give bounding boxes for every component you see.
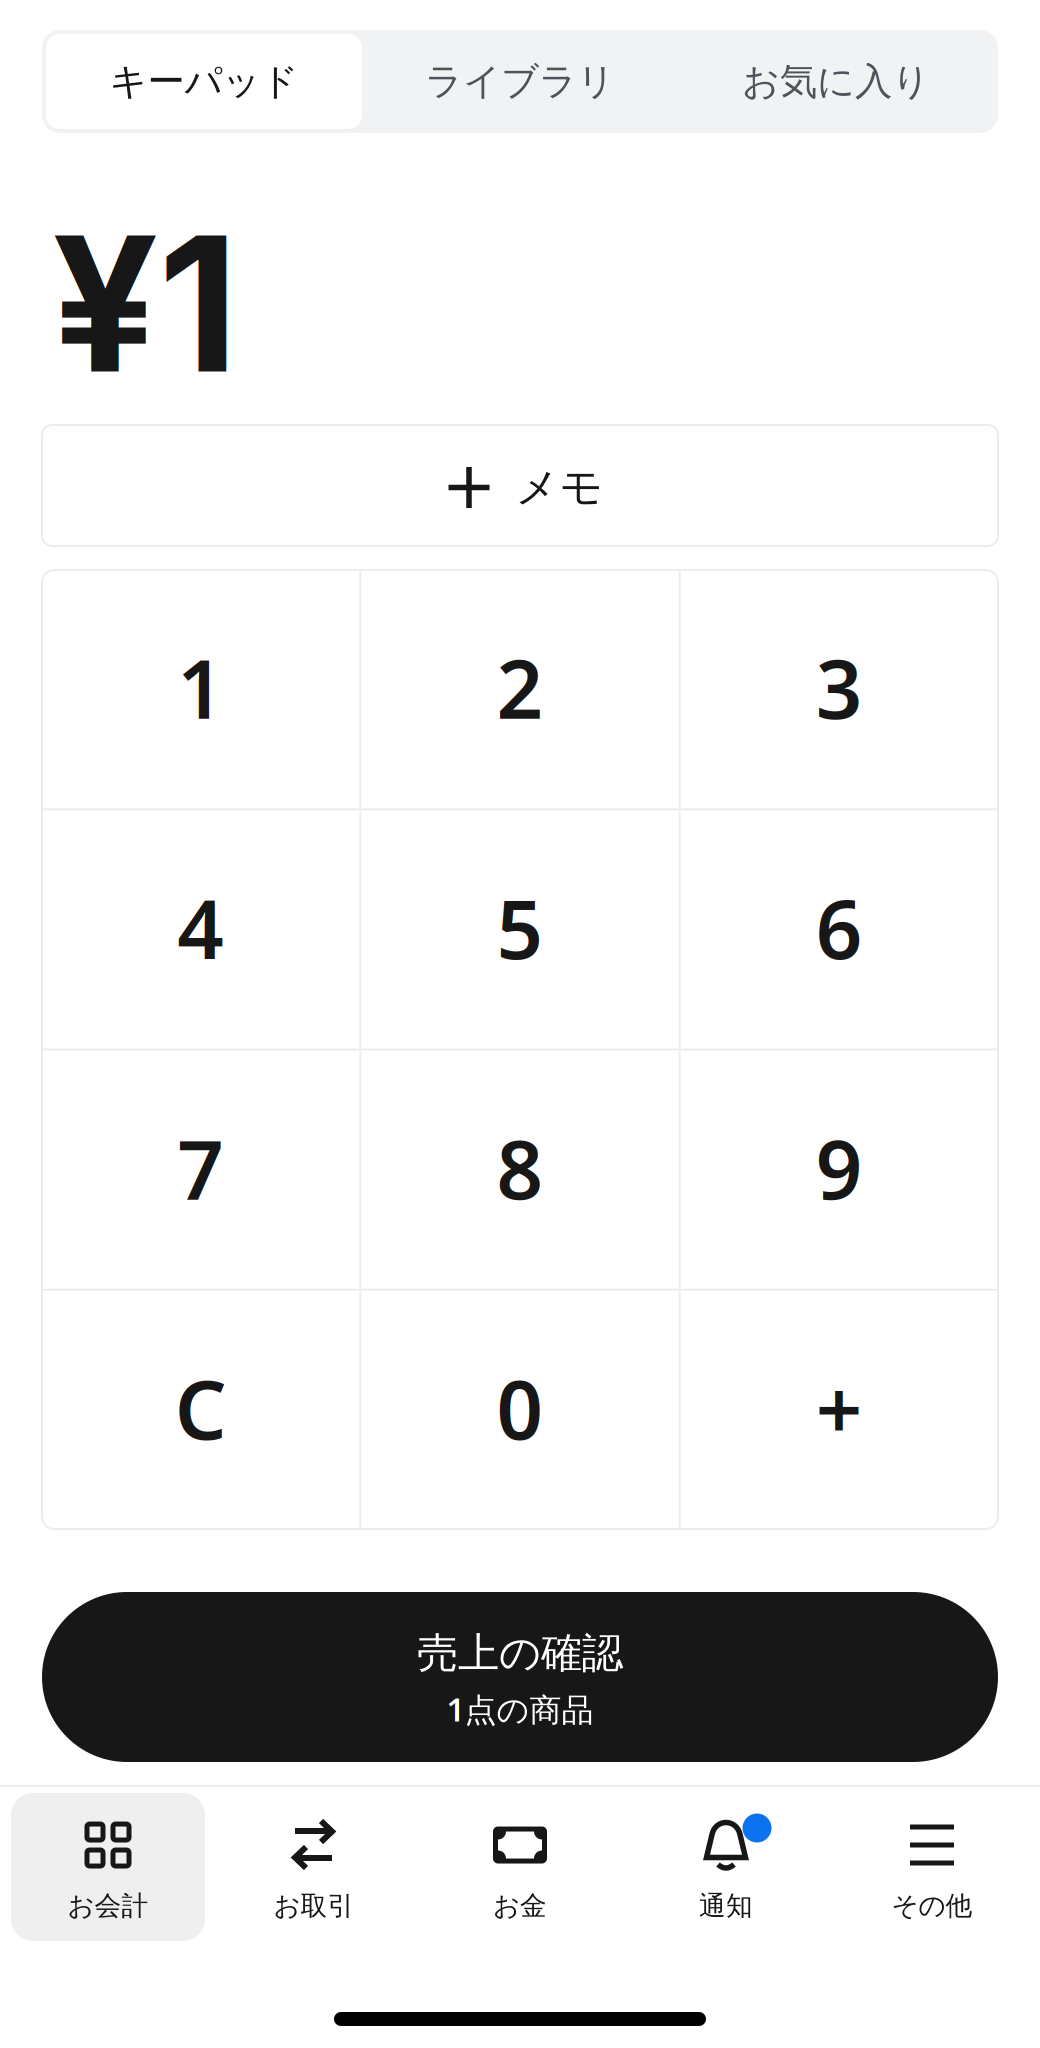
button[interactable]: お気に入り	[678, 34, 994, 129]
staticText: お会計	[67, 1889, 148, 1923]
staticText: 6	[816, 872, 863, 983]
button[interactable]: 7	[42, 1050, 359, 1289]
staticText: 2	[496, 632, 543, 742]
button[interactable]: 通知	[623, 1793, 829, 1941]
staticText: メモ	[515, 461, 603, 514]
staticText: お金	[493, 1889, 547, 1923]
staticText: 9	[816, 1112, 863, 1223]
staticText: 3	[816, 632, 863, 742]
button[interactable]: メモ	[42, 425, 998, 546]
button[interactable]: 1	[42, 570, 359, 808]
button[interactable]: 6	[681, 810, 998, 1048]
button[interactable]: 0	[361, 1291, 679, 1529]
staticText: 売上の確認	[417, 1627, 623, 1679]
staticText: その他	[891, 1889, 972, 1923]
staticText: ライブラリ	[425, 58, 615, 105]
staticText: 0	[496, 1352, 543, 1463]
button[interactable]: Clear	[42, 1291, 359, 1529]
staticText: 通知	[699, 1889, 753, 1923]
button[interactable]: 売上の確認	[42, 1592, 998, 1762]
button[interactable]: 5	[361, 810, 679, 1048]
staticText: C	[175, 1352, 227, 1463]
button[interactable]: お取引	[211, 1793, 417, 1941]
staticText: ¥1	[52, 191, 238, 416]
button[interactable]: 3	[681, 570, 998, 808]
staticText: 7	[177, 1112, 224, 1223]
button[interactable]: Add	[681, 1291, 998, 1529]
button[interactable]: 4	[42, 810, 359, 1048]
staticText: 5	[496, 872, 543, 983]
button[interactable]: 8	[361, 1050, 679, 1289]
staticText: 1	[177, 632, 224, 742]
button[interactable]: その他	[829, 1793, 1035, 1941]
button[interactable]: お会計	[5, 1793, 211, 1941]
button[interactable]: ライブラリ	[362, 34, 678, 129]
button[interactable]: 2	[361, 570, 679, 808]
staticText: キーパッド	[109, 58, 298, 105]
staticText: 1点の商品	[446, 1687, 593, 1731]
staticText: 4	[177, 872, 224, 983]
button[interactable]: キーパッド	[46, 34, 362, 129]
button[interactable]: 9	[681, 1050, 998, 1289]
staticText: お取引	[273, 1889, 354, 1923]
button[interactable]: お金	[417, 1793, 623, 1941]
staticText: お気に入り	[742, 58, 930, 105]
staticText: 8	[496, 1112, 543, 1223]
staticText: +	[816, 1352, 863, 1463]
